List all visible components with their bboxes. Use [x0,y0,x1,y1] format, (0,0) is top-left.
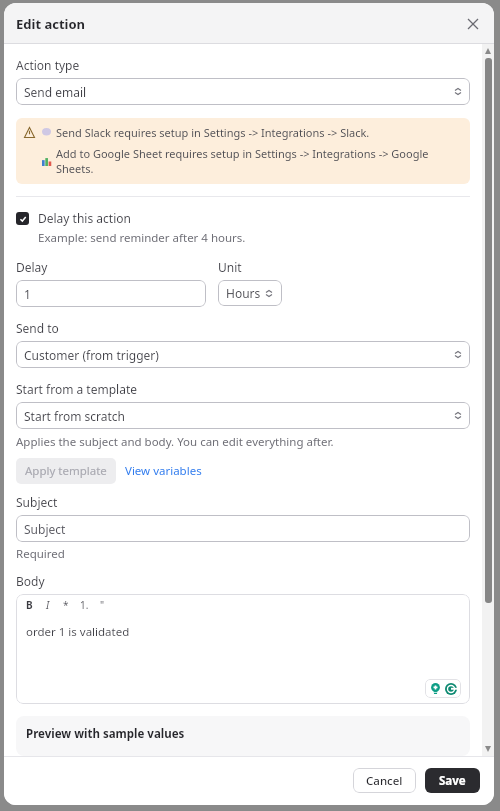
staticText: Apply template [25,463,107,479]
staticText: Subject [16,494,58,510]
staticText: Customer (from trigger) [24,347,454,363]
button[interactable]: Suggestions [428,681,443,696]
staticText: 1 [24,286,31,302]
staticText: order 1 is validated [26,624,130,640]
staticText: Preview with sample values [26,726,185,742]
staticText: Send to [16,320,59,336]
staticText: Unit [218,259,242,275]
button[interactable]: 1. [80,598,89,612]
staticText: Save [439,773,466,789]
staticText: View variables [125,463,202,479]
staticText: Applies the subject and body. You can ed… [16,434,334,450]
staticText: Edit action [16,15,86,33]
staticText: Action type [16,57,80,73]
staticText: Body [16,573,45,589]
button[interactable]: Start from scratch [16,402,470,429]
button[interactable]: Hours [218,280,282,306]
button[interactable]: * [63,598,69,612]
staticText: Start from scratch [24,408,454,424]
button[interactable]: Grammarly [443,681,458,696]
button[interactable]: Subject [16,515,470,542]
staticText: Example: send reminder after 4 hours. [38,230,246,246]
button[interactable]: I [46,598,50,612]
staticText: Required [16,546,65,562]
button[interactable]: View variables [125,459,202,483]
staticText: Hours [226,285,261,301]
button[interactable]: Delay this action [16,210,131,226]
staticText: Subject [24,521,66,537]
button[interactable]: Cancel [353,768,416,793]
button[interactable]: Apply template [16,458,116,484]
button[interactable]: Customer (from trigger) [16,341,470,368]
staticText: Start from a template [16,381,137,397]
staticText: Cancel [366,773,403,789]
staticText: Send email [24,84,454,100]
staticText: Delay [16,259,48,275]
button[interactable]: 1 [16,280,206,307]
button[interactable]: Send email [16,78,470,105]
button[interactable]: " [100,598,105,612]
button[interactable]: Close [462,13,484,35]
button[interactable]: Save [425,768,480,793]
staticText: Delay this action [38,210,131,226]
staticText: Send Slack requires setup in Settings ->… [56,125,370,140]
staticText: Add to Google Sheet requires setup in Se… [56,146,462,176]
button[interactable]: B [26,598,33,612]
